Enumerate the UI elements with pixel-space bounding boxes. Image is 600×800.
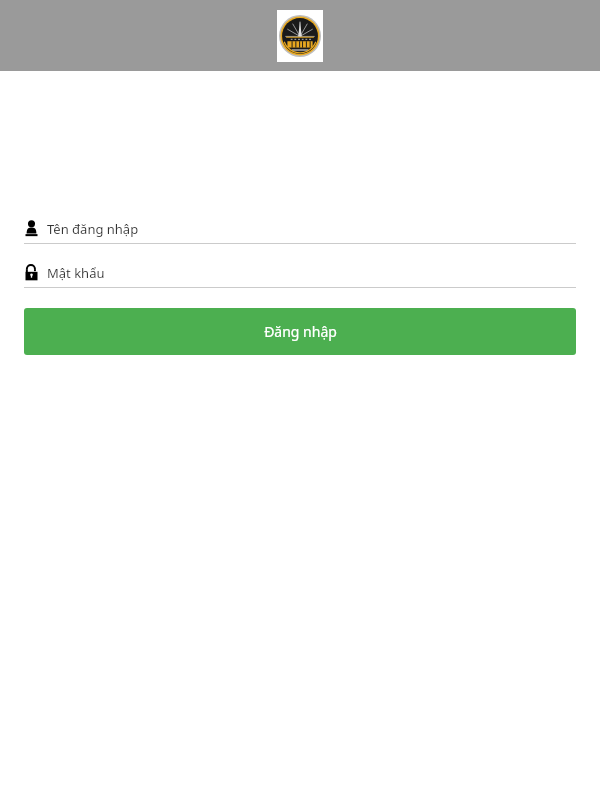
staticText: Đăng nhập	[264, 322, 337, 341]
staticText: Mật khẩu	[47, 264, 105, 282]
button[interactable]: Mật khẩu	[24, 258, 576, 287]
staticText: Tên đăng nhập	[47, 220, 139, 238]
button[interactable]: Đăng nhập	[24, 308, 576, 355]
button[interactable]: Tên đăng nhập	[24, 214, 576, 243]
other: Hai Van logo	[277, 10, 323, 62]
